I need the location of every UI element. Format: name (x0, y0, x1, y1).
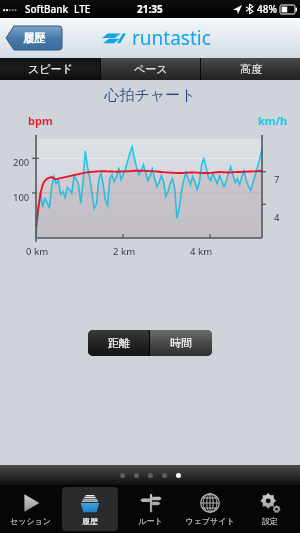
button[interactable]: セッション (2, 487, 58, 531)
button[interactable]: 高度 (201, 58, 300, 80)
staticText: ウェブサイト (185, 516, 235, 526)
staticText: SoftBank (25, 2, 69, 16)
staticText: 4 (274, 211, 280, 224)
staticText: 心拍チャート (0, 86, 300, 105)
staticText: 履歴 (82, 516, 98, 526)
staticText: スピード (28, 62, 73, 76)
button[interactable]: スピード (0, 58, 100, 80)
button[interactable]: ペース (101, 58, 200, 80)
button[interactable]: ルート (122, 487, 178, 531)
staticText: 21:35 (137, 2, 163, 16)
staticText: LTE (74, 2, 91, 16)
staticText: 2 km (113, 245, 136, 258)
staticText: ルート (138, 516, 163, 526)
staticText: km/h (258, 113, 288, 128)
staticText: 200 (13, 156, 30, 169)
staticText: セッション (10, 516, 51, 526)
button[interactable]: 履歴に戻る (6, 26, 62, 50)
staticText: 距離 (108, 336, 130, 350)
button[interactable]: 時間 (150, 330, 212, 356)
staticText: 時間 (170, 336, 192, 350)
staticText: 4 km (190, 245, 213, 258)
button[interactable]: ウェブサイト (182, 487, 238, 531)
staticText: 48% (257, 2, 277, 16)
staticText: 高度 (240, 62, 262, 76)
staticText: runtastic (132, 25, 211, 51)
staticText: ペース (134, 62, 168, 76)
button[interactable]: 距離 (88, 330, 149, 356)
staticText: bpm (28, 113, 53, 128)
staticText: 履歴 (23, 31, 45, 45)
staticText: 100 (13, 191, 30, 204)
staticText: 7 (274, 173, 280, 186)
staticText: 0 km (26, 245, 49, 258)
button[interactable]: 履歴 (62, 487, 118, 531)
button[interactable]: 設定 (242, 487, 298, 531)
staticText: 設定 (262, 516, 278, 526)
